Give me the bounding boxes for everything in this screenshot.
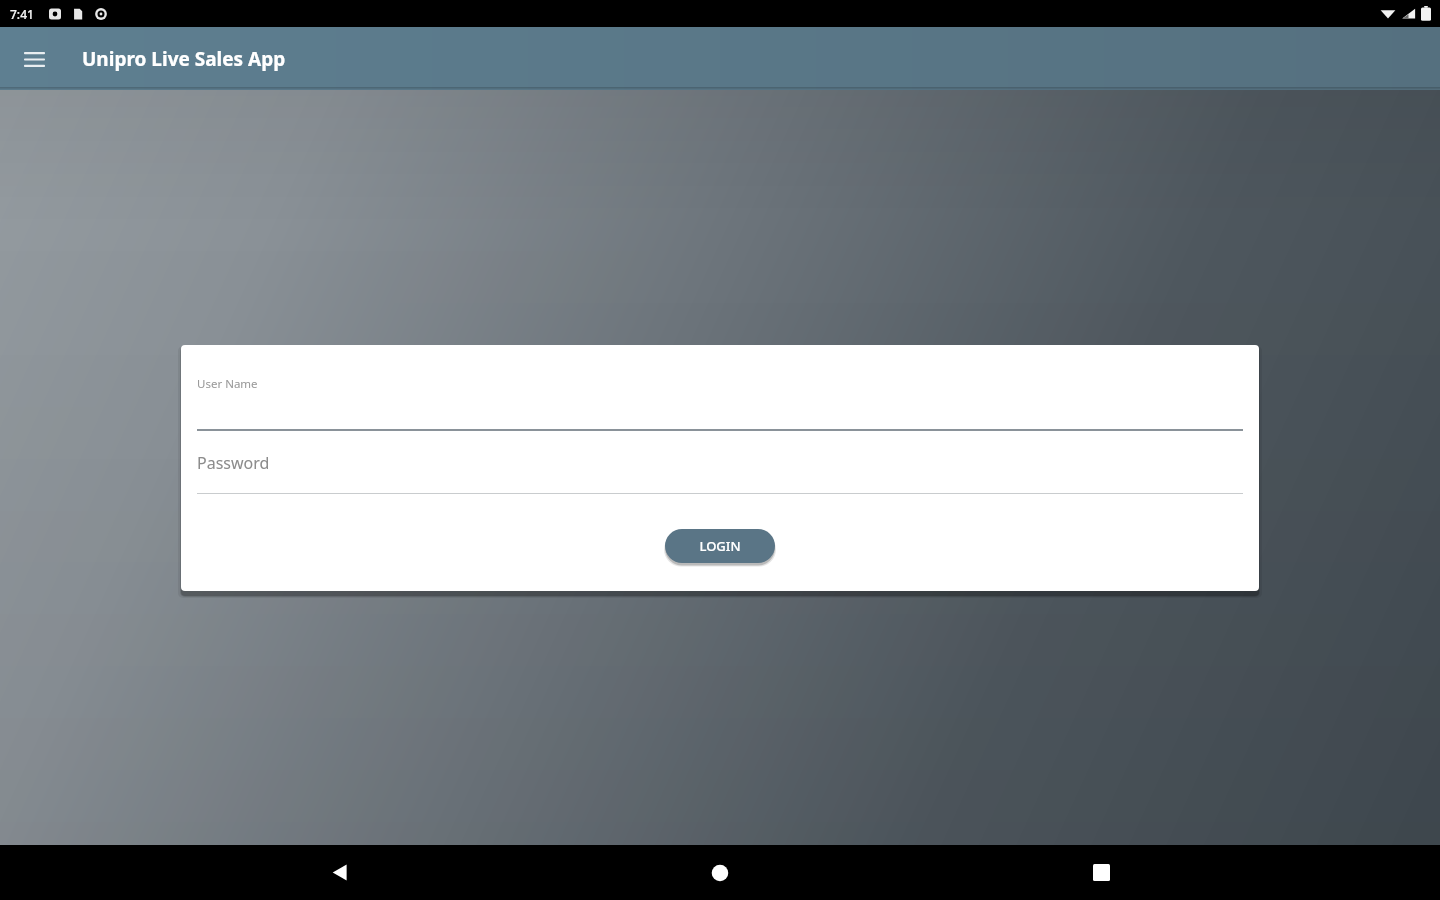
staticText: User Name bbox=[197, 376, 258, 392]
staticText: Unipro Live Sales App bbox=[82, 46, 286, 72]
button[interactable]: Recent apps bbox=[1059, 845, 1143, 900]
button[interactable]: Open navigation menu bbox=[12, 37, 56, 81]
button[interactable]: Home bbox=[678, 845, 762, 900]
staticText: LOGIN bbox=[699, 537, 741, 555]
button[interactable]: Back bbox=[297, 845, 381, 900]
button[interactable]: LOGIN bbox=[665, 529, 775, 563]
staticText: Password bbox=[197, 452, 270, 474]
staticText: 7:41 bbox=[10, 6, 34, 22]
